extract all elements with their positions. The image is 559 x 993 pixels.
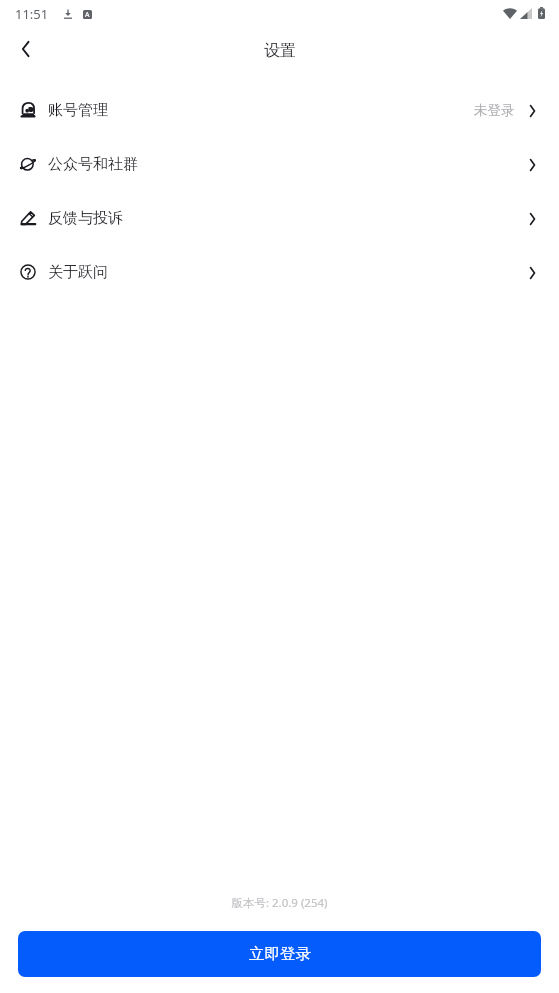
staticText: 11:51 <box>15 5 49 23</box>
staticText: 版本号: 2.0.9 (254) <box>0 895 559 911</box>
button[interactable]: 关于跃问 <box>0 245 559 299</box>
staticText: 关于跃问 <box>48 263 108 282</box>
button[interactable]: 立即登录 <box>18 931 541 977</box>
button[interactable]: Back <box>0 27 51 74</box>
staticText: 反馈与投诉 <box>48 209 123 228</box>
staticText: 公众号和社群 <box>48 155 138 174</box>
staticText: 立即登录 <box>249 944 311 964</box>
button[interactable]: 账号管理 <box>0 83 559 137</box>
staticText: 账号管理 <box>48 101 108 120</box>
button[interactable]: 公众号和社群 <box>0 137 559 191</box>
staticText: 未登录 <box>474 102 515 119</box>
button[interactable]: 反馈与投诉 <box>0 191 559 245</box>
staticText: 设置 <box>264 41 296 61</box>
staticText: A <box>85 10 90 19</box>
